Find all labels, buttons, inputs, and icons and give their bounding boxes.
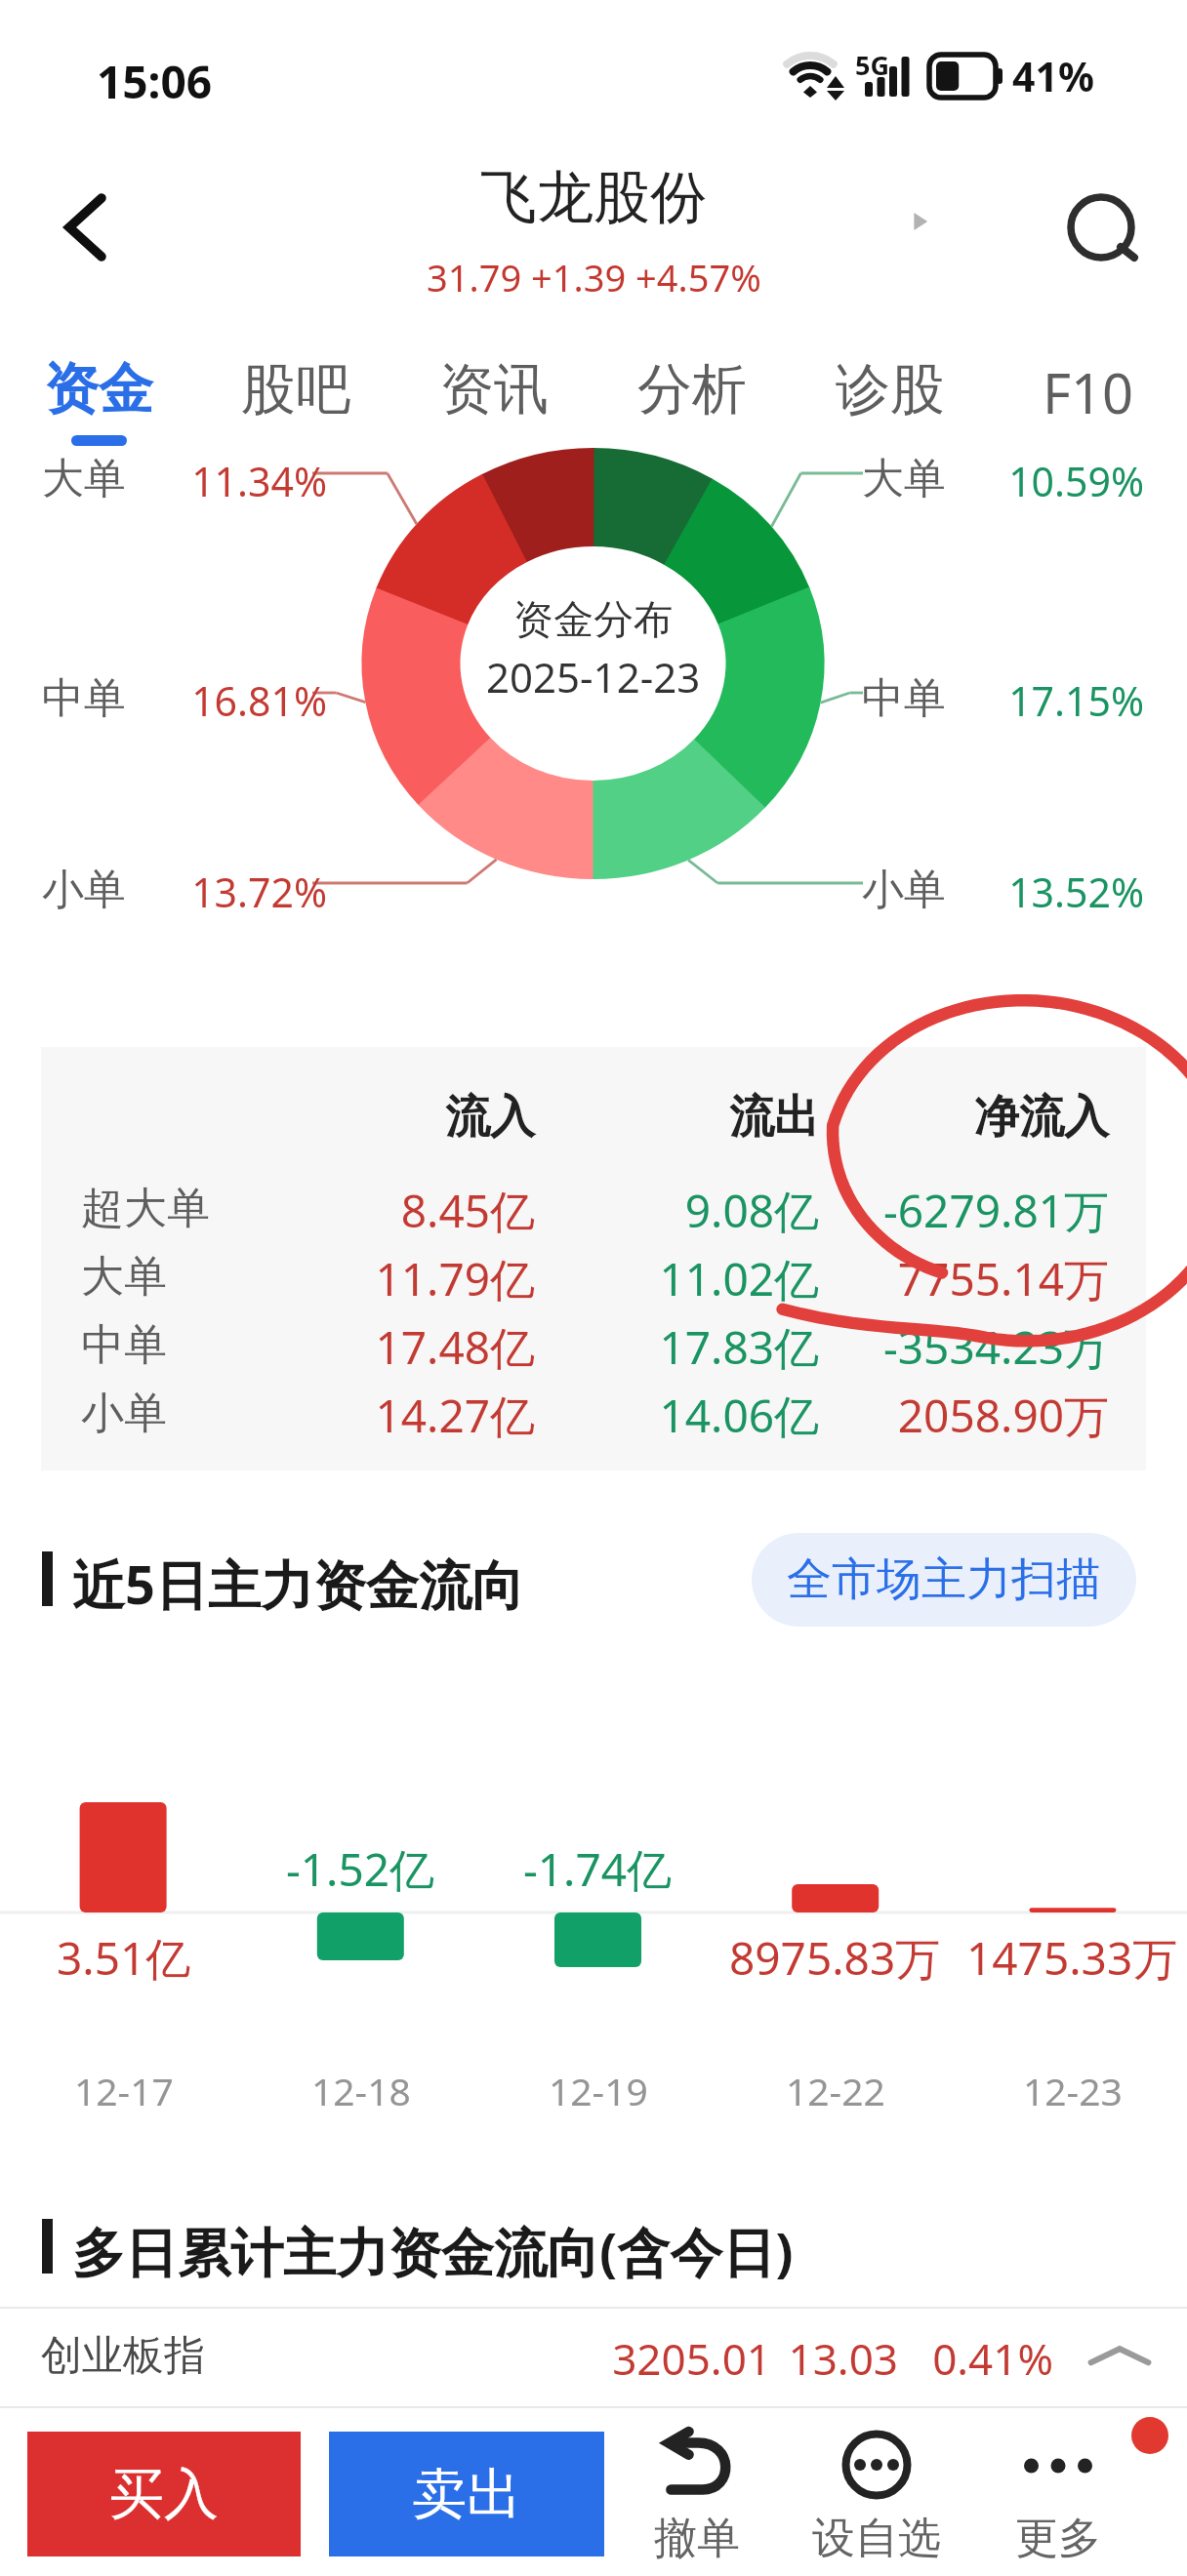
staticText: 创业板指 [41,2330,205,2382]
staticText: 3205.01 [586,2329,771,2388]
staticText: 7755.14万 [816,1248,1109,1309]
staticText: -6279.81万 [816,1180,1109,1241]
staticText: 14.06亿 [585,1385,819,1446]
staticText: 41% [1012,49,1094,103]
button[interactable]: 买入 [27,2432,301,2556]
staticText: 14.27亿 [301,1385,535,1446]
staticText: 飞龙股份 [480,162,707,233]
staticText: 1475.33万 [966,1927,1178,1989]
staticText: 12-17 [74,2065,174,2116]
staticText: 12-18 [311,2065,411,2116]
staticText: 12-23 [1023,2065,1123,2116]
staticText: 资金分布 [513,595,674,646]
staticText: 小单 [81,1387,167,1440]
staticText: 11.02亿 [585,1248,819,1309]
staticText: 16.81% [135,673,327,728]
staticText: 分析 [637,355,747,424]
staticText: 大单 [42,453,126,505]
button[interactable]: 更多 [968,2418,1148,2566]
staticText: 9.08亿 [585,1180,819,1241]
staticText: 3.51亿 [57,1927,191,1989]
staticText: 10.59% [952,454,1144,508]
button[interactable]: 撤单 [607,2418,787,2566]
staticText: -1.74亿 [523,1838,673,1900]
staticText: 12-22 [786,2065,885,2116]
staticText: 全市场主力扫描 [787,1551,1101,1608]
staticText: 11.34% [135,454,327,508]
button[interactable]: 创业板指 [0,2309,1187,2406]
button[interactable]: 分析 [593,351,791,459]
staticText: 流出 [624,1089,819,1146]
staticText: 中单 [862,672,946,725]
staticText: 超大单 [81,1182,210,1235]
staticText: 资金 [44,355,153,424]
staticText: 买入 [109,2460,219,2529]
staticText: 卖出 [412,2460,521,2529]
staticText: 中单 [81,1318,167,1372]
staticText: 17.15% [952,673,1144,728]
staticText: 股吧 [241,355,350,424]
button[interactable]: 卖出 [329,2432,604,2556]
button[interactable]: 全市场主力扫描 [752,1533,1136,1627]
staticText: 多日累计主力资金流向(含今日) [72,2215,794,2287]
staticText: 小单 [862,864,946,916]
staticText: 17.48亿 [301,1316,535,1378]
button[interactable]: Search [1060,185,1154,279]
staticText: 小单 [42,864,126,916]
button[interactable]: Back [37,181,131,274]
staticText: 11.79亿 [301,1248,535,1309]
staticText: 设自选 [812,2512,941,2565]
staticText: 资讯 [439,355,549,424]
staticText: 中单 [42,672,126,725]
staticText: 8975.83万 [729,1927,941,1989]
staticText: 大单 [862,453,946,505]
button[interactable]: 资讯 [394,351,593,459]
staticText: F10 [1043,355,1134,429]
staticText: 净流入 [865,1089,1109,1146]
staticText: 13.52% [952,865,1144,919]
button[interactable]: F10 [989,351,1187,459]
staticText: 13.03 [771,2329,898,2388]
staticText: 2025-12-23 [486,649,701,704]
staticText: 撤单 [654,2512,740,2565]
button[interactable]: 设自选 [787,2418,966,2566]
staticText: 31.79 +1.39 +4.57% [427,252,761,302]
staticText: 12-19 [549,2065,648,2116]
staticText: 大单 [81,1250,167,1304]
button[interactable]: 股吧 [197,351,394,459]
button[interactable]: 诊股 [791,351,989,459]
staticText: 15:06 [97,51,213,112]
staticText: 近5日主力资金流向 [72,1548,524,1620]
staticText: 13.72% [135,865,327,919]
staticText: 诊股 [836,355,945,424]
staticText: 流入 [340,1089,535,1146]
staticText: 0.41% [907,2329,1053,2388]
button[interactable]: 资金 [0,351,197,459]
staticText: 2058.90万 [816,1385,1109,1446]
staticText: -3534.23万 [816,1316,1109,1378]
staticText: 17.83亿 [585,1316,819,1378]
staticText: 8.45亿 [301,1180,535,1241]
staticText: 更多 [1015,2512,1101,2565]
staticText: 5G [855,47,889,83]
staticText: -1.52亿 [286,1838,435,1900]
